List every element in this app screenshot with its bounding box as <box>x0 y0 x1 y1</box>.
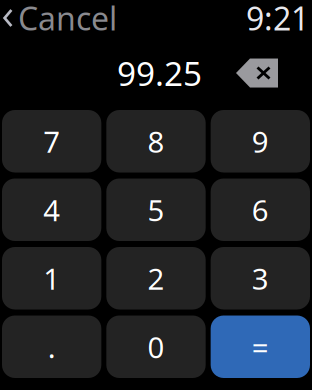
button[interactable]: 3 <box>211 247 310 309</box>
button[interactable]: 1 <box>2 247 101 309</box>
staticText: 0 <box>147 327 164 366</box>
button[interactable]: Cancel <box>3 0 117 39</box>
button[interactable]: Delete <box>236 58 278 88</box>
button[interactable]: 0 <box>106 315 206 378</box>
button[interactable]: = <box>211 315 310 378</box>
staticText: 6 <box>252 190 269 229</box>
staticText: 9:21 <box>246 0 309 39</box>
staticText: 4 <box>43 190 60 229</box>
button[interactable]: 8 <box>106 110 206 172</box>
staticText: 8 <box>147 122 164 161</box>
staticText: 1 <box>43 259 60 298</box>
button[interactable]: 5 <box>106 178 206 241</box>
staticText: 3 <box>252 259 269 298</box>
staticText: 9 <box>252 122 269 161</box>
staticText: = <box>252 327 269 366</box>
staticText: 2 <box>147 259 164 298</box>
button[interactable]: 6 <box>211 178 310 241</box>
staticText: Cancel <box>18 0 117 39</box>
staticText: 99.25 <box>117 51 202 95</box>
staticText: . <box>48 327 56 366</box>
button[interactable]: 2 <box>106 247 206 309</box>
staticText: 5 <box>147 190 164 229</box>
button[interactable]: 9 <box>211 110 310 172</box>
button[interactable]: 7 <box>2 110 101 172</box>
button[interactable]: 4 <box>2 178 101 241</box>
button[interactable]: . <box>2 315 101 378</box>
staticText: 7 <box>43 122 60 161</box>
